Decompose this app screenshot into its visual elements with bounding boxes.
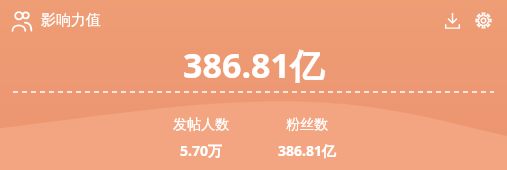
staticText: 影响力值 bbox=[41, 11, 101, 30]
staticText: 粉丝数 bbox=[286, 116, 328, 134]
button[interactable]: Settings bbox=[470, 7, 496, 33]
staticText: 发帖人数 bbox=[173, 116, 229, 134]
button[interactable]: 粉丝数 bbox=[264, 114, 350, 162]
button[interactable]: 影响力值 bbox=[11, 6, 101, 35]
staticText: 386.81亿 bbox=[278, 141, 336, 160]
button[interactable]: Download bbox=[439, 7, 465, 33]
button[interactable]: 发帖人数 bbox=[158, 114, 244, 162]
staticText: 386.81亿 bbox=[183, 42, 324, 88]
staticText: 5.70万 bbox=[180, 141, 222, 160]
